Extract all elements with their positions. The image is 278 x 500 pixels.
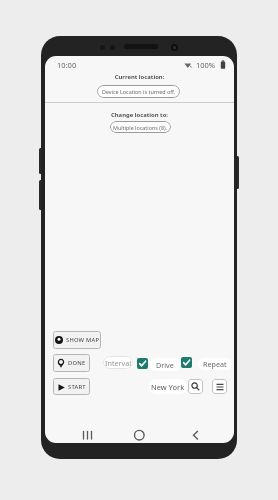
button[interactable] bbox=[181, 357, 192, 368]
button[interactable]: SHOW MAP bbox=[53, 331, 101, 349]
staticText: Device Location is turned off. bbox=[102, 88, 176, 95]
button[interactable]: Multiple locations (8). bbox=[110, 121, 171, 133]
button[interactable] bbox=[78, 427, 100, 442]
staticText: Drive bbox=[156, 360, 174, 370]
staticText: New York bbox=[151, 382, 185, 392]
staticText: Multiple locations (8). bbox=[113, 124, 168, 131]
button[interactable]: New York bbox=[149, 379, 187, 394]
staticText: Interval bbox=[105, 358, 132, 368]
button[interactable]: Device Location is turned off. bbox=[97, 85, 180, 98]
staticText: Current location: bbox=[45, 73, 234, 81]
button[interactable]: START bbox=[53, 378, 90, 395]
button[interactable] bbox=[212, 379, 227, 394]
staticText: START bbox=[68, 383, 86, 391]
button[interactable] bbox=[128, 427, 150, 442]
staticText: 100% bbox=[196, 60, 216, 70]
staticText: 10:00 bbox=[57, 60, 77, 70]
button[interactable]: Interval bbox=[103, 356, 133, 369]
button[interactable]: Repeat bbox=[198, 358, 232, 370]
staticText: Repeat bbox=[203, 359, 227, 369]
button[interactable] bbox=[188, 379, 203, 394]
button[interactable] bbox=[185, 427, 207, 442]
staticText: SHOW MAP bbox=[66, 336, 100, 344]
button[interactable]: DONE bbox=[53, 354, 90, 372]
staticText: DONE bbox=[68, 359, 86, 367]
button[interactable]: Drive bbox=[150, 358, 180, 371]
button[interactable] bbox=[137, 358, 148, 369]
staticText: Change location to: bbox=[45, 111, 234, 119]
